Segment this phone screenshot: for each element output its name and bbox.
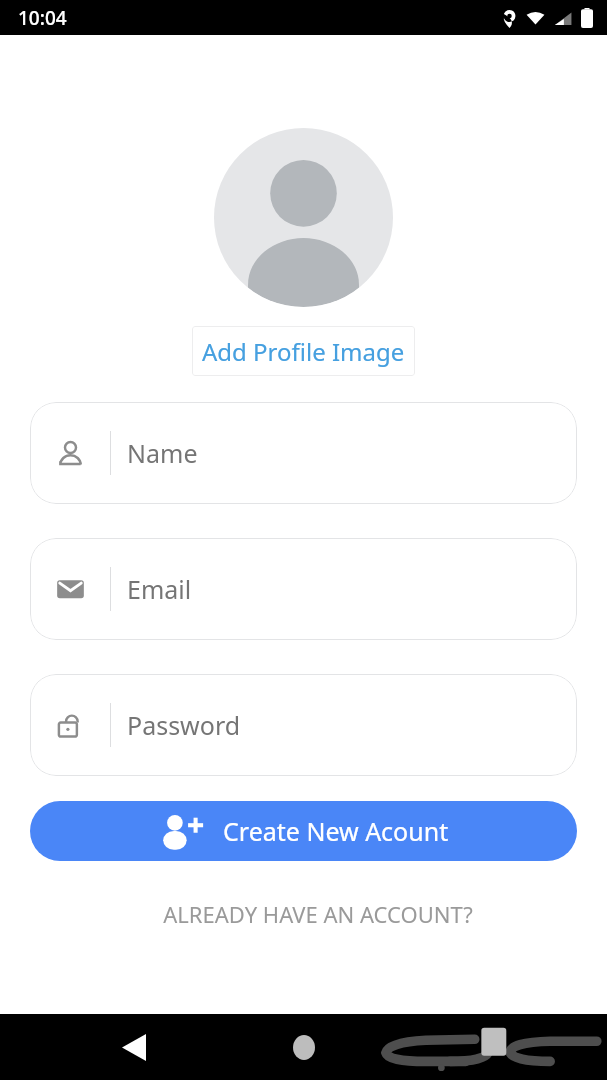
button[interactable]: Home (278, 1021, 330, 1073)
button[interactable]: Profile image (214, 128, 393, 307)
button[interactable]: ALREADY HAVE AN ACCOUNT? (0, 893, 607, 935)
staticText: Add Profile Image (202, 335, 405, 368)
staticText: 10:04 (18, 5, 67, 31)
button[interactable]: Name (30, 402, 577, 504)
staticText: ALREADY HAVE AN ACCOUNT? (163, 899, 473, 929)
button[interactable]: Back (108, 1021, 160, 1073)
staticText: Email (127, 572, 192, 606)
staticText: Create New Acount (223, 814, 449, 848)
staticText: Name (127, 436, 198, 470)
button[interactable]: Email (30, 538, 577, 640)
button[interactable]: Create New Acount (30, 801, 577, 861)
button[interactable]: Add Profile Image (192, 326, 415, 376)
staticText: Password (127, 708, 241, 742)
button[interactable]: Password (30, 674, 577, 776)
